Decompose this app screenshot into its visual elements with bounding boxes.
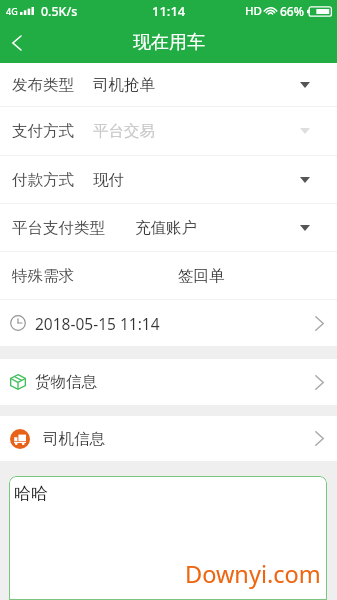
button[interactable]: Back [0, 22, 40, 63]
staticText: 司机抢单 [93, 75, 155, 95]
staticText: Downyi.com [185, 558, 321, 590]
button[interactable]: 货物信息 [0, 359, 337, 405]
staticText: 平台支付类型 [12, 218, 105, 238]
staticText: 现在用车 [133, 31, 205, 54]
staticText: 哈哈 [14, 483, 48, 504]
button[interactable]: 发布类型 [0, 63, 337, 106]
staticText: 货物信息 [35, 372, 97, 392]
button[interactable]: 哈哈 [9, 476, 327, 600]
button[interactable]: 2018-05-15 11:14 [0, 300, 337, 346]
button[interactable]: 特殊需求 [0, 252, 337, 299]
staticText: 66% [280, 3, 304, 19]
staticText: 付款方式 [12, 170, 74, 190]
staticText: 2018-05-15 11:14 [35, 313, 160, 334]
staticText: 发布类型 [12, 75, 74, 95]
button[interactable]: 平台支付类型 [0, 204, 337, 251]
staticText: 11:14 [152, 2, 186, 20]
button[interactable]: 司机信息 [0, 416, 337, 461]
staticText: 充值账户 [135, 218, 197, 238]
staticText: 司机信息 [43, 429, 105, 449]
staticText: 支付方式 [12, 121, 74, 141]
button[interactable]: 付款方式 [0, 156, 337, 203]
button[interactable]: 支付方式 [0, 107, 337, 155]
staticText: 4G [6, 5, 18, 17]
staticText: 平台交易 [93, 121, 155, 141]
staticText: 0.5K/s [41, 3, 78, 20]
staticText: 现付 [93, 170, 124, 190]
staticText: HD [245, 3, 263, 19]
staticText: 签回单 [178, 266, 225, 286]
staticText: 特殊需求 [12, 266, 74, 286]
